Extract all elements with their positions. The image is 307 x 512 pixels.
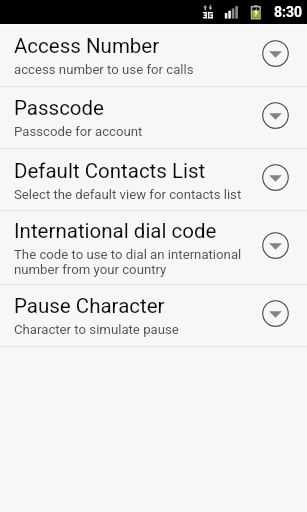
staticText: access number to use for calls — [14, 62, 194, 77]
staticText: International dial code — [14, 219, 217, 243]
staticText: Pause Character — [14, 294, 165, 318]
button[interactable]: Open list — [253, 225, 297, 265]
staticText: Passcode for account — [14, 124, 143, 139]
button[interactable]: Open list — [253, 33, 297, 73]
staticText: The code to use to dial an international… — [14, 247, 242, 277]
staticText: Select the default view for contacts lis… — [14, 187, 242, 202]
staticText: 8:30 — [274, 4, 303, 20]
button[interactable]: Pause Character — [0, 285, 307, 346]
button[interactable]: International dial code — [0, 211, 307, 284]
staticText: Access Number — [14, 34, 160, 58]
button[interactable]: Open list — [253, 95, 297, 135]
button[interactable]: Open list — [253, 293, 297, 333]
staticText: Default Contacts List — [14, 159, 206, 183]
staticText: Character to simulate pause — [14, 322, 179, 337]
button[interactable]: Open list — [253, 157, 297, 197]
button[interactable]: Default Contacts List — [0, 149, 307, 210]
staticText: Passcode — [14, 96, 104, 120]
button[interactable]: Access Number — [0, 25, 307, 86]
button[interactable]: Passcode — [0, 87, 307, 148]
